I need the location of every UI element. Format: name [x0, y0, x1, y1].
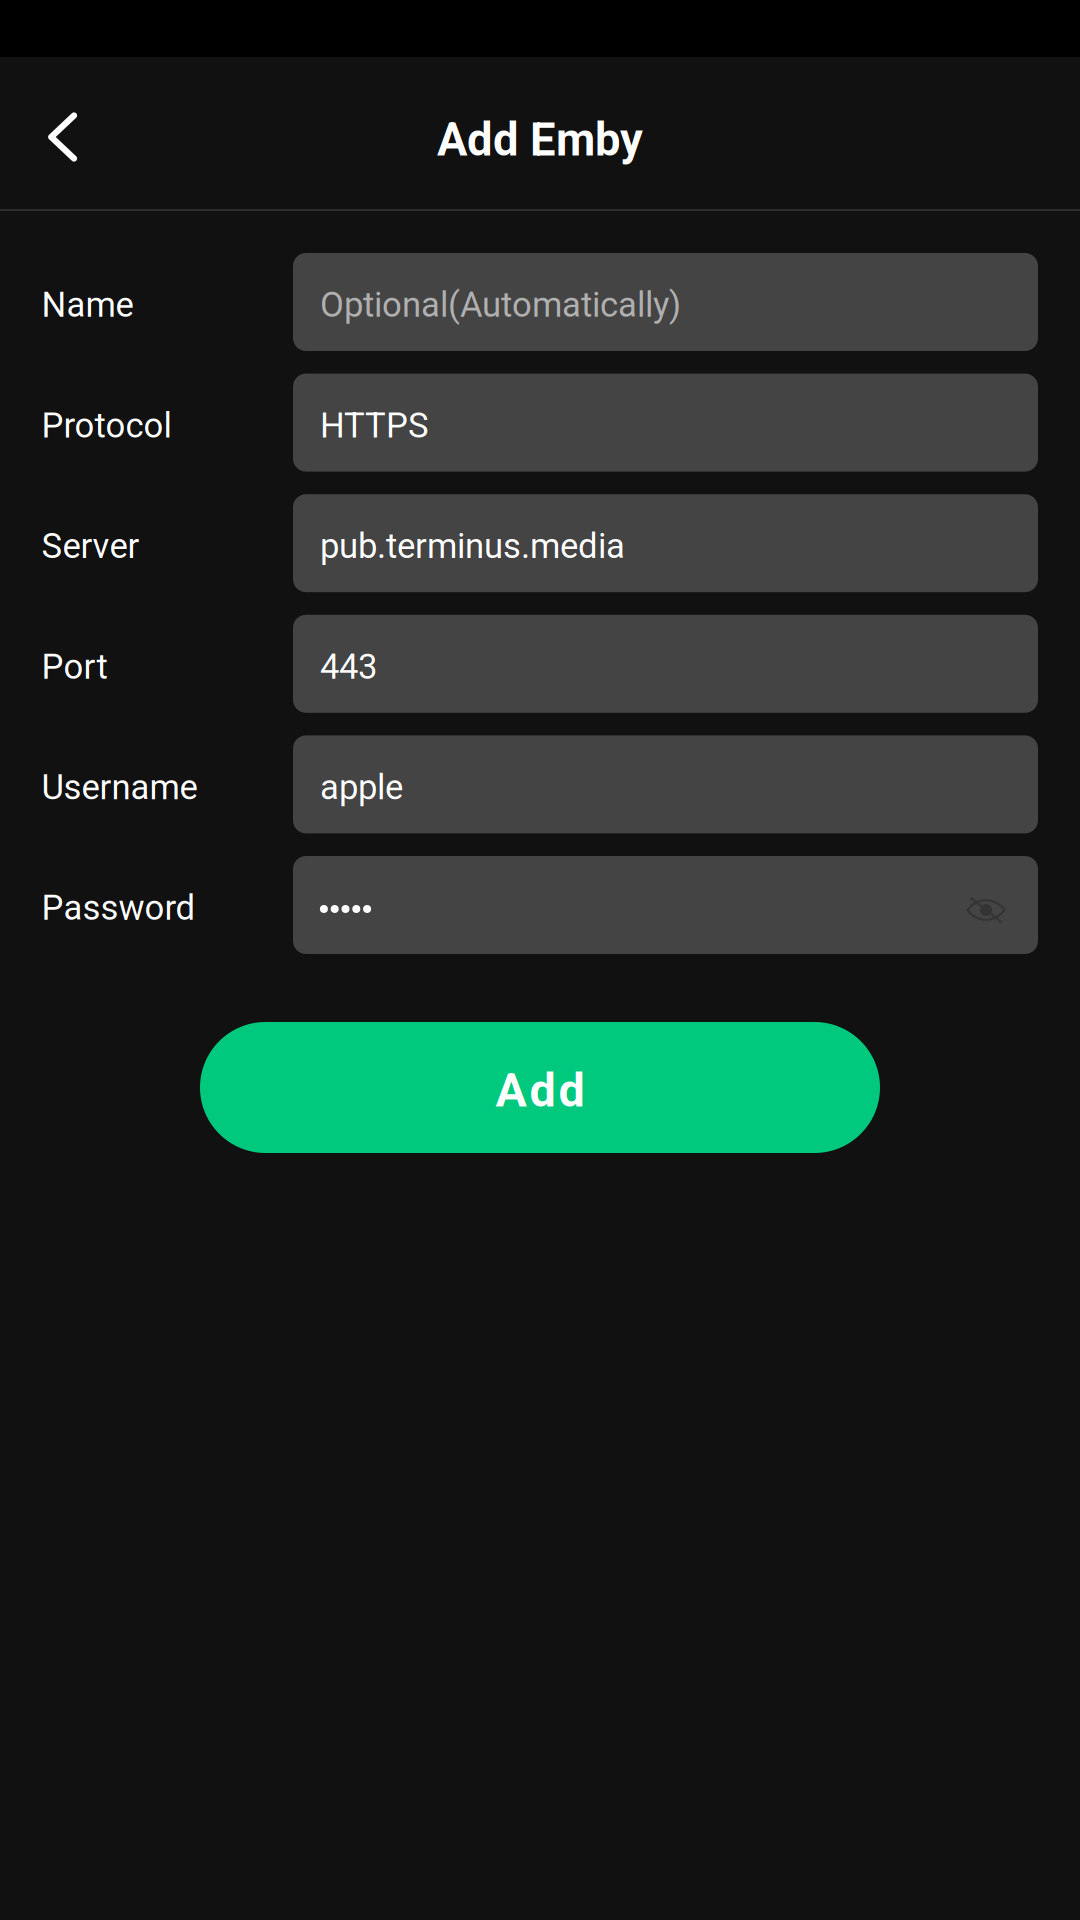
button[interactable]: pub.terminus.media: [293, 494, 1038, 592]
button[interactable]: HTTPS: [293, 374, 1038, 472]
staticText: 443: [320, 646, 377, 687]
staticText: apple: [320, 767, 403, 808]
button[interactable]: apple: [293, 735, 1038, 833]
button[interactable]: 443: [293, 615, 1038, 713]
staticText: Optional(Automatically): [320, 285, 681, 325]
staticText: Username: [41, 767, 197, 808]
staticText: Server: [41, 526, 139, 566]
staticText: pub.terminus.media: [320, 526, 625, 566]
button[interactable]: Add: [200, 1022, 880, 1153]
staticText: Port: [41, 646, 107, 687]
staticText: HTTPS: [320, 405, 429, 446]
staticText: Name: [41, 285, 133, 325]
button[interactable]: Back: [15, 83, 111, 183]
staticText: Protocol: [41, 405, 171, 446]
staticText: Add: [495, 1063, 584, 1118]
button[interactable]: Show password: [974, 891, 1014, 919]
button[interactable]: Optional(Automatically): [293, 253, 1038, 351]
staticText: Password: [41, 888, 195, 928]
button[interactable]: [293, 856, 1038, 954]
staticText: Add Emby: [437, 113, 643, 166]
